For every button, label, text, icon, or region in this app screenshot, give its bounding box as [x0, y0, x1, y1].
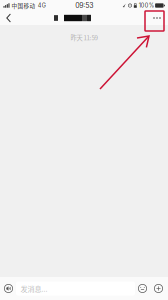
- staticText: 昨天 11:59: [70, 33, 97, 42]
- staticText: 中国移动: [12, 1, 36, 9]
- staticText: 09:53: [75, 1, 93, 10]
- button[interactable]: Emoji: [135, 277, 150, 300]
- button[interactable]: Voice input: [1, 277, 16, 300]
- button[interactable]: More options: [150, 277, 167, 300]
- staticText: 100%: [139, 2, 154, 9]
- staticText: 发消息...: [20, 283, 47, 294]
- button[interactable]: Back: [0, 11, 18, 25]
- staticText: 4G: [38, 2, 46, 9]
- button[interactable]: More: [146, 11, 168, 25]
